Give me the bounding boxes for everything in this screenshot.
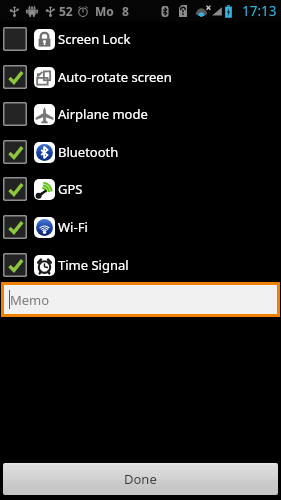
button[interactable]: Wi-Fi [0, 208, 281, 246]
button[interactable]: Time Signal [0, 246, 281, 284]
staticText: Airplane mode [58, 105, 148, 123]
button[interactable]: Screen Lock [0, 20, 281, 58]
button[interactable]: GPS [0, 170, 281, 208]
staticText: 17:13 [242, 2, 277, 20]
staticText: Time Signal [58, 256, 129, 274]
staticText: Memo [10, 291, 50, 309]
staticText: Auto-rotate screen [58, 68, 172, 86]
staticText: GPS [58, 180, 83, 198]
button[interactable]: Memo [4, 285, 277, 314]
staticText: 52 [59, 3, 73, 19]
staticText: 8 [122, 3, 129, 19]
button[interactable]: Bluetooth [0, 133, 281, 171]
button[interactable]: Done [3, 463, 278, 495]
button[interactable]: Auto-rotate screen [0, 58, 281, 96]
staticText: Screen Lock [58, 30, 131, 48]
staticText: Mo [95, 3, 114, 19]
button[interactable]: Airplane mode [0, 95, 281, 133]
staticText: Bluetooth [58, 143, 119, 161]
staticText: Done [124, 470, 157, 488]
staticText: Wi-Fi [58, 218, 88, 236]
